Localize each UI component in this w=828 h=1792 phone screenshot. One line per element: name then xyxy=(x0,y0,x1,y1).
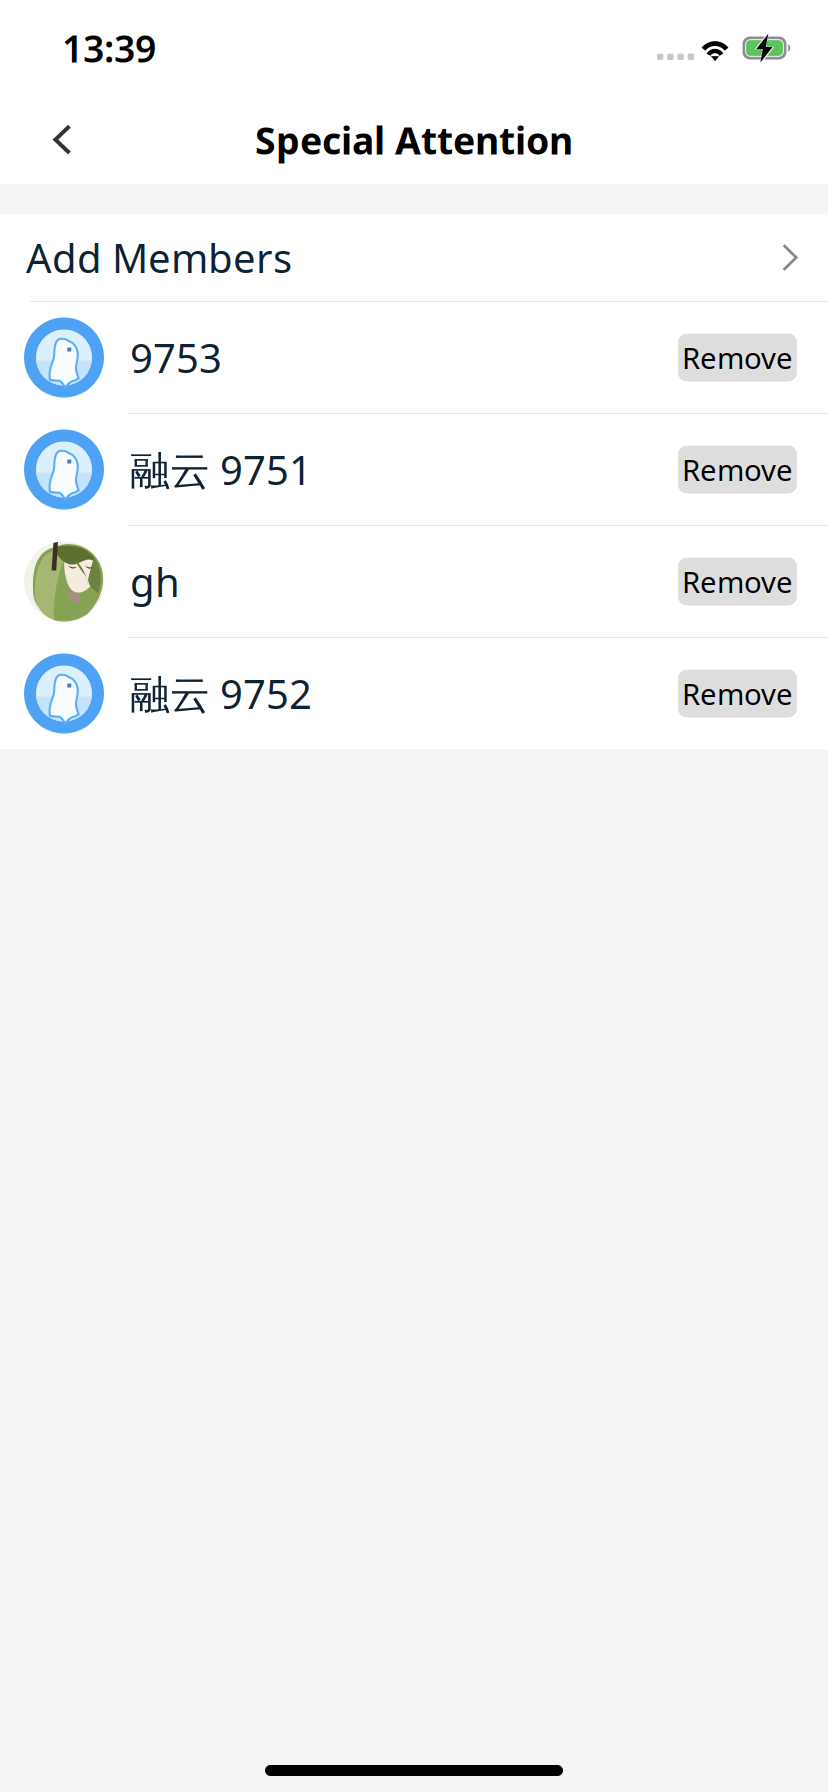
button[interactable]: Remove xyxy=(678,414,797,525)
button[interactable]: 融云 9752 xyxy=(0,638,678,749)
button[interactable]: Remove xyxy=(678,638,797,749)
button[interactable]: 融云 9751 xyxy=(0,414,678,525)
staticText: 融云 9751 xyxy=(130,443,312,496)
button[interactable]: Add Members xyxy=(0,214,828,301)
staticText: 9753 xyxy=(130,331,222,384)
button[interactable]: 9753 xyxy=(0,302,678,413)
staticText: Add Members xyxy=(26,231,292,284)
staticText: Remove xyxy=(682,674,793,713)
staticText: gh xyxy=(130,555,180,608)
staticText: Remove xyxy=(682,450,793,489)
button[interactable]: Remove xyxy=(678,302,797,413)
button[interactable]: Remove xyxy=(678,526,797,637)
staticText: Remove xyxy=(682,562,793,601)
button[interactable]: Back xyxy=(0,102,84,178)
staticText: 13:39 xyxy=(62,23,156,73)
staticText: 融云 9752 xyxy=(130,667,312,720)
staticText: Special Attention xyxy=(255,115,573,165)
staticText: Remove xyxy=(682,338,793,377)
button[interactable]: gh xyxy=(0,526,678,637)
